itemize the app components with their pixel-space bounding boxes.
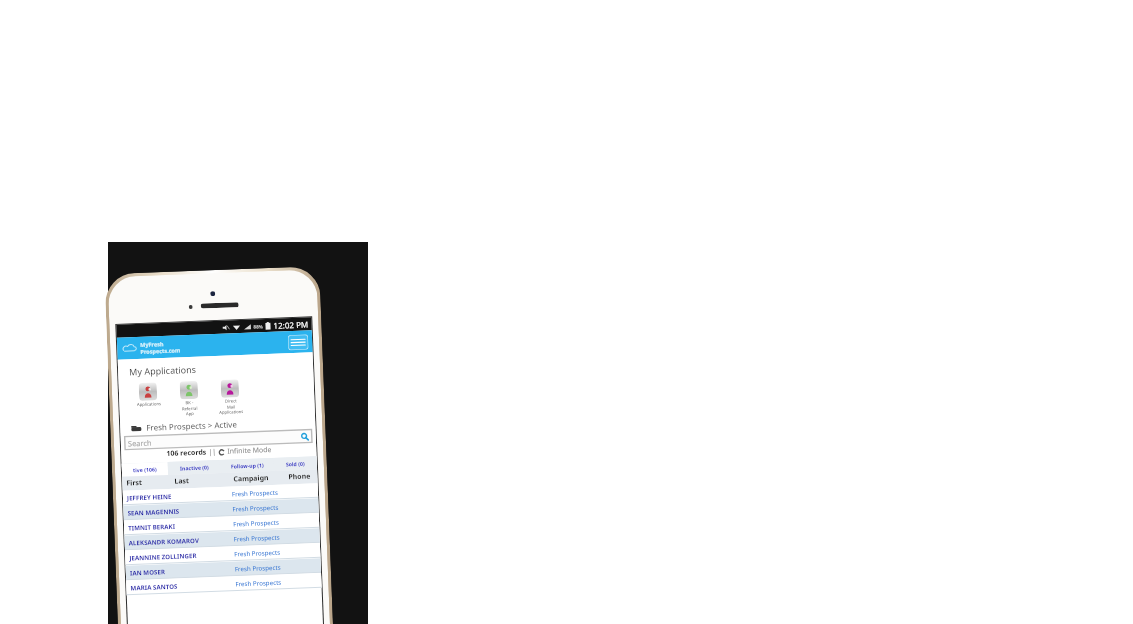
button[interactable]: Follow-up (1) <box>220 458 274 473</box>
staticText: Fresh Prospects <box>235 563 281 572</box>
staticText: Fresh Prospects <box>234 548 280 557</box>
button[interactable]: IAN MOSER <box>126 558 321 580</box>
staticText: IAN MOSER <box>130 567 165 576</box>
staticText: Last <box>174 476 190 487</box>
staticText: JEANNINE ZOLLINGER <box>129 551 197 561</box>
staticText: Sold (0) <box>286 460 305 467</box>
button[interactable]: Inactive (0) <box>168 460 220 475</box>
staticText: 12:02 PM <box>273 318 309 331</box>
button[interactable]: Sold (0) <box>274 456 317 471</box>
button[interactable]: Search <box>125 429 312 450</box>
button[interactable]: ALEKSANDR KOMAROV <box>124 528 320 550</box>
staticText: 106 records <box>166 447 207 459</box>
button[interactable]: tive (106) <box>122 462 168 477</box>
button[interactable]: JEFFREY HEINE <box>123 483 318 505</box>
button[interactable]: BK - Referral App <box>172 380 207 417</box>
staticText: Fresh Prospects <box>232 503 279 513</box>
button[interactable]: Applications <box>131 382 165 408</box>
staticText: 88% <box>253 323 264 330</box>
staticText: BK - Referral App <box>181 400 198 416</box>
button[interactable]: JEANNINE ZOLLINGER <box>125 543 320 565</box>
button[interactable]: Menu <box>288 334 308 350</box>
staticText: Prospects.com <box>140 346 180 355</box>
button[interactable]: Infinite Mode <box>227 445 272 457</box>
staticText: || <box>208 447 216 457</box>
button[interactable]: Direct Mail Applications <box>212 379 248 415</box>
staticText: Direct Mail Applications <box>218 398 244 415</box>
staticText: Applications <box>136 401 161 408</box>
staticText: Campaign <box>233 473 270 484</box>
button[interactable]: MARIA SANTOS <box>126 573 322 595</box>
staticText: Inactive (0) <box>180 463 209 471</box>
staticText: ALEKSANDR KOMAROV <box>129 536 200 546</box>
button[interactable]: Search <box>301 433 309 441</box>
button[interactable]: TIMNIT BERAKI <box>124 513 319 535</box>
staticText: Follow-up (1) <box>231 461 264 470</box>
staticText: Fresh Prospects <box>235 578 281 587</box>
staticText: SEAN MAGENNIS <box>127 507 180 517</box>
staticText: Fresh Prospects <box>233 518 279 528</box>
staticText: Fresh Prospects > Active <box>146 418 237 433</box>
staticText: First <box>126 478 143 489</box>
staticText: TIMNIT BERAKI <box>128 522 175 531</box>
staticText: Fresh Prospects <box>232 488 278 498</box>
staticText: JEFFREY HEINE <box>127 492 172 501</box>
staticText: Search <box>128 438 152 448</box>
button[interactable]: Fresh Prospects > Active <box>131 415 315 433</box>
button[interactable]: SEAN MAGENNIS <box>123 498 319 520</box>
staticText: My Applications <box>129 363 196 377</box>
staticText: Fresh Prospects <box>233 533 280 542</box>
staticText: Phone <box>288 471 311 482</box>
staticText: tive (106) <box>133 465 157 473</box>
staticText: MyFresh <box>140 340 164 348</box>
staticText: MARIA SANTOS <box>130 582 178 591</box>
